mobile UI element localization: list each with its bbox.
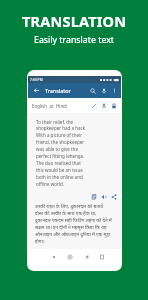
staticText: Translator xyxy=(45,87,71,94)
button[interactable]: Back xyxy=(33,87,40,94)
staticText: Easily translate text xyxy=(34,34,114,46)
button[interactable]: Search xyxy=(90,88,96,94)
staticText: TRANSLATION xyxy=(22,11,127,31)
button[interactable]: Listen xyxy=(101,194,107,200)
button[interactable]: Save xyxy=(111,103,117,109)
button[interactable]: Recents xyxy=(99,254,105,260)
button[interactable]: English xyxy=(32,103,67,109)
button[interactable]: Edit xyxy=(91,103,97,109)
button[interactable]: Voice input xyxy=(101,88,107,94)
button[interactable]: Copy xyxy=(91,194,97,200)
staticText: Hindi xyxy=(56,103,67,109)
button[interactable]: Share xyxy=(111,194,117,200)
button[interactable]: Home xyxy=(67,254,73,260)
button[interactable]: Speak xyxy=(101,103,107,109)
staticText: English xyxy=(32,103,47,109)
staticText: उनकी राहत के लिए, दुकानदार को बताये दोस्… xyxy=(35,203,112,245)
button[interactable]: Back xyxy=(84,254,90,260)
staticText: To their relief, the shopkeeper had a ha… xyxy=(36,119,86,188)
staticText: 7:50 PM xyxy=(30,77,43,82)
button[interactable]: More options xyxy=(112,88,117,93)
button[interactable]: Keyboard xyxy=(51,254,57,260)
